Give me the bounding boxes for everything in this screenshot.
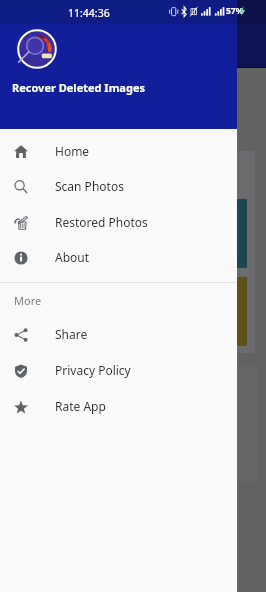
button[interactable]: Restored Photos	[0, 205, 237, 240]
staticText: Privacy Policy	[55, 362, 131, 378]
button[interactable]: Rate App	[0, 389, 237, 424]
staticText: About	[55, 249, 90, 265]
button[interactable]: Scan Photos	[0, 169, 237, 204]
staticText: Share	[55, 326, 88, 342]
staticText: Restored Photos	[55, 214, 148, 230]
staticText: Home	[55, 143, 90, 159]
staticText: 11:44:36	[68, 6, 110, 20]
button[interactable]: About	[0, 240, 237, 275]
button[interactable]: Home	[0, 134, 237, 169]
staticText: Scan Photos	[55, 178, 124, 194]
button[interactable]: Share	[0, 317, 237, 352]
staticText: Recover Deleted Images	[12, 80, 145, 95]
button[interactable]: Privacy Policy	[0, 353, 237, 388]
staticText: 57%	[226, 5, 244, 17]
staticText: Rate App	[55, 398, 106, 414]
staticText: More	[14, 293, 42, 308]
